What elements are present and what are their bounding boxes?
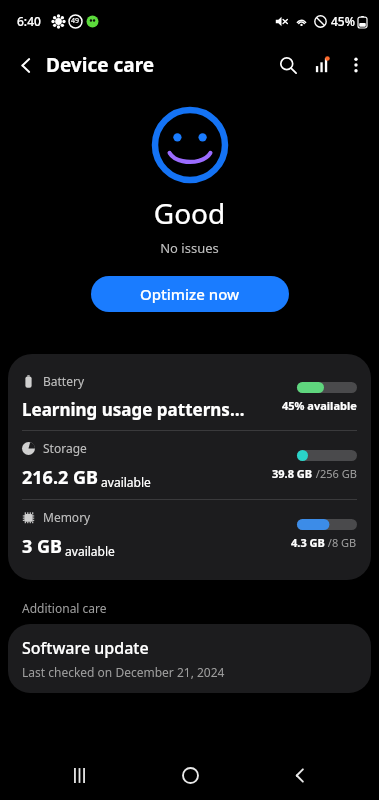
- button[interactable]: Usage statistics: [305, 48, 339, 82]
- staticText: Memory: [43, 509, 91, 525]
- staticText: Good: [0, 194, 379, 232]
- button[interactable]: Home: [158, 750, 222, 800]
- staticText: /8 GB: [325, 535, 357, 550]
- staticText: No issues: [0, 239, 379, 257]
- button[interactable]: Navigate up: [8, 47, 44, 83]
- staticText: Storage: [43, 440, 87, 456]
- staticText: /256 GB: [313, 466, 357, 481]
- staticText: Optimize now: [140, 284, 240, 304]
- staticText: 45% available: [282, 398, 357, 413]
- button[interactable]: Recent apps: [47, 750, 111, 800]
- staticText: 216.2 GB: [22, 465, 98, 490]
- staticText: Last checked on December 21, 2024: [22, 664, 225, 680]
- button[interactable]: Optimize now: [91, 276, 289, 312]
- button[interactable]: Storage: [8, 431, 371, 499]
- staticText: available: [62, 543, 115, 559]
- button[interactable]: More options: [339, 48, 373, 82]
- button[interactable]: Software update: [8, 624, 371, 693]
- staticText: 6:40: [17, 13, 41, 29]
- staticText: 39.8 GB: [272, 466, 313, 481]
- staticText: Additional care: [22, 600, 107, 616]
- button[interactable]: Back: [268, 750, 332, 800]
- staticText: Learning usage patterns…: [22, 398, 245, 421]
- staticText: 3 GB: [22, 534, 62, 559]
- staticText: 4.3 GB: [291, 535, 325, 550]
- button[interactable]: Search: [271, 48, 305, 82]
- staticText: Software update: [22, 637, 149, 659]
- staticText: Battery: [43, 373, 85, 389]
- staticText: 45%: [331, 13, 355, 29]
- button[interactable]: Battery: [8, 364, 371, 430]
- button[interactable]: Memory: [8, 500, 371, 568]
- staticText: available: [98, 474, 151, 490]
- staticText: Device care: [46, 52, 155, 78]
- staticText: 49: [71, 16, 80, 26]
